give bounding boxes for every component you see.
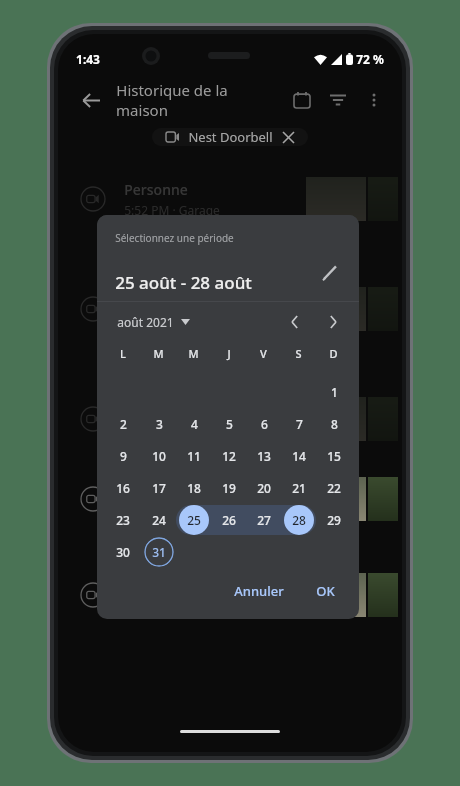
staticText: 7 [296,416,303,432]
button[interactable]: Previous month [279,306,311,338]
button[interactable]: 9 [108,441,138,471]
staticText: 4 [191,416,198,432]
staticText: L [120,346,126,361]
staticText: 13 [257,448,271,464]
staticText: Annuler [234,582,284,600]
staticText: 20 [257,480,271,496]
staticText: 1 [331,384,338,400]
button[interactable]: 25 [179,505,209,535]
staticText: 17 [152,480,166,496]
staticText: 5:40 PM · Garage [124,312,220,328]
staticText: 19 [222,480,236,496]
button[interactable]: 18 [179,473,209,503]
button[interactable]: 17 [144,473,174,503]
button[interactable]: 20 [249,473,279,503]
button[interactable]: 26 [214,505,244,535]
button[interactable]: 30 [108,537,138,567]
button[interactable]: 8 [319,409,349,439]
staticText: OK [316,582,335,600]
staticText: 30 [116,544,130,560]
staticText: 5:32 PM · Garage [124,422,220,438]
button[interactable]: Next month [317,306,349,338]
staticText: Personne [124,180,188,199]
button[interactable]: 19 [214,473,244,503]
staticText: 8 [331,416,338,432]
staticText: 16 [116,480,130,496]
button[interactable]: Annuler [224,575,294,607]
button[interactable]: 1 [319,377,349,407]
button[interactable]: OK [306,575,345,607]
button[interactable]: More options [356,82,392,118]
staticText: V [260,346,267,361]
button[interactable]: 7 [284,409,314,439]
staticText: 3 [156,416,163,432]
button[interactable]: 23 [108,505,138,535]
button[interactable]: Personne [58,566,402,624]
button[interactable]: Personne [58,470,402,528]
staticText: 27 [257,512,271,528]
staticText: 11 [187,448,201,464]
button[interactable]: Personne [58,170,402,228]
button[interactable]: Back [70,80,110,120]
button[interactable]: août 2021 [113,310,194,334]
button[interactable]: 29 [319,505,349,535]
staticText: Nest Doorbell [188,128,273,146]
staticText: Sélectionnez une période [115,231,234,245]
staticText: 23 [116,512,130,528]
button[interactable]: 27 [249,505,279,535]
button[interactable]: 2 [108,409,138,439]
staticText: 5 [226,416,233,432]
staticText: 14 [292,448,306,464]
button[interactable]: 10 [144,441,174,471]
staticText: 25 août - 28 août [115,271,252,294]
button[interactable]: 4 [179,409,209,439]
staticText: M [153,346,164,361]
button[interactable]: 5 [214,409,244,439]
button[interactable]: 3 [144,409,174,439]
button[interactable]: 22 [319,473,349,503]
button[interactable]: Personne [58,280,402,338]
button[interactable]: 16 [108,473,138,503]
button[interactable]: 13 [249,441,279,471]
staticText: 18 [187,480,201,496]
staticText: 5:52 PM · Garage [124,202,220,218]
button[interactable]: 12 [214,441,244,471]
staticText: 22 [327,480,341,496]
staticText: S [295,346,302,361]
button[interactable]: 14 [284,441,314,471]
staticText: 72 % [356,51,384,67]
button[interactable]: Edit date [313,255,347,289]
button[interactable]: Filter [320,82,356,118]
button[interactable]: Calendar [284,82,320,118]
button[interactable]: Personne [58,390,402,448]
staticText: 24 [152,512,166,528]
staticText: 29 [327,512,341,528]
staticText: 6 [261,416,268,432]
staticText: 10 [152,448,166,464]
staticText: Historique de la [116,80,228,100]
staticText: 5:26 PM · Garage [124,502,220,518]
staticText: août 2021 [117,314,174,330]
staticText: 28 [292,512,306,528]
button[interactable]: 6 [249,409,279,439]
button[interactable]: Nest Doorbell [152,128,308,146]
button[interactable]: 31 [144,537,174,567]
staticText: Personne [124,480,188,499]
staticText: 15 [327,448,341,464]
button[interactable]: 15 [319,441,349,471]
staticText: 26 [222,512,236,528]
staticText: 25 [187,512,201,528]
staticText: J [227,346,231,361]
staticText: 1:43 [76,51,100,67]
button[interactable]: 21 [284,473,314,503]
staticText: 2 [120,416,127,432]
staticText: 21 [292,480,306,496]
button[interactable]: 24 [144,505,174,535]
staticText: M [188,346,199,361]
button[interactable]: 28 [284,505,314,535]
button[interactable]: 11 [179,441,209,471]
